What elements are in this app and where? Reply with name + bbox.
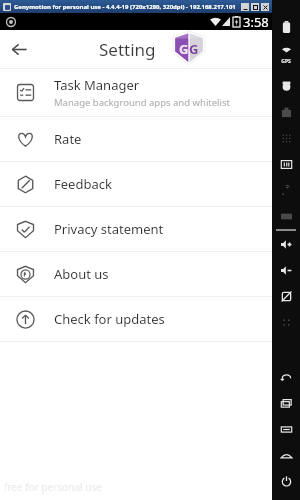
- button[interactable]: Home: [272, 442, 300, 468]
- staticText: Task Manager: [54, 76, 140, 94]
- button[interactable]: Disk: [272, 99, 300, 125]
- button[interactable]: Privacy statement: [0, 207, 272, 251]
- staticText: About us: [54, 265, 109, 283]
- button[interactable]: About us: [0, 252, 272, 296]
- button[interactable]: Back: [0, 30, 38, 68]
- button[interactable]: More: [272, 309, 300, 335]
- staticText: GPS: [281, 58, 291, 65]
- button[interactable]: Task Manager: [0, 69, 272, 116]
- button[interactable]: Network: [272, 177, 300, 203]
- button[interactable]: Volume up: [272, 231, 300, 257]
- button[interactable]: Identifiers: [272, 151, 300, 177]
- button[interactable]: Keyboard: [272, 203, 300, 229]
- button[interactable]: Volume down: [272, 257, 300, 283]
- staticText: G: [189, 40, 199, 58]
- staticText: Setting: [99, 38, 156, 61]
- button[interactable]: Rate: [0, 117, 272, 161]
- staticText: Privacy statement: [54, 220, 164, 238]
- button[interactable]: Power: [272, 468, 300, 494]
- button[interactable]: GPS: [272, 40, 300, 66]
- button[interactable]: Recents: [272, 390, 300, 416]
- staticText: 3:58: [243, 13, 269, 30]
- staticText: Genymotion for personal use - 4.4.4-19 (…: [14, 3, 236, 11]
- staticText: free for personal use: [4, 480, 102, 494]
- staticText: Feedback: [54, 175, 112, 193]
- staticText: Manage background apps and whitelist: [54, 96, 231, 109]
- staticText: G: [179, 40, 189, 58]
- staticText: Check for updates: [54, 310, 165, 328]
- button[interactable]: Rotate: [272, 283, 300, 309]
- staticText: Rate: [54, 130, 82, 148]
- button[interactable]: Menu: [272, 416, 300, 442]
- button[interactable]: Check for updates: [0, 297, 272, 341]
- button[interactable]: Camera: [272, 73, 300, 99]
- button[interactable]: Back: [272, 364, 300, 390]
- button[interactable]: Feedback: [0, 162, 272, 206]
- button[interactable]: Keypad: [272, 125, 300, 151]
- button[interactable]: Battery: [272, 14, 300, 40]
